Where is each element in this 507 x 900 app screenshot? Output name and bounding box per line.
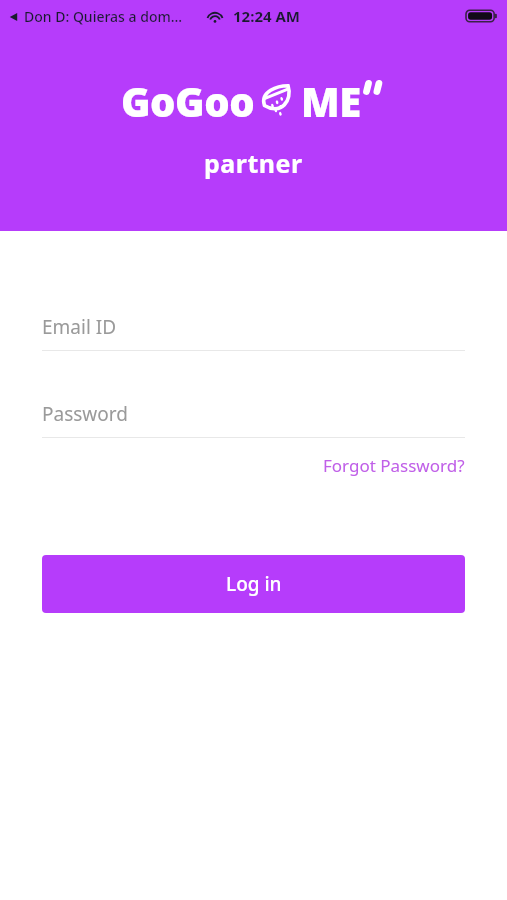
button[interactable]: Email ID bbox=[42, 314, 465, 351]
staticText: Forgot Password? bbox=[323, 454, 465, 477]
staticText: Password bbox=[42, 401, 128, 427]
staticText: partner bbox=[204, 146, 303, 180]
button[interactable]: Log in bbox=[42, 555, 465, 613]
staticText: Don D: Quieras a dom… bbox=[24, 7, 183, 26]
button[interactable]: Password bbox=[42, 401, 465, 438]
staticText: Email ID bbox=[42, 314, 117, 340]
button[interactable]: Forgot Password? bbox=[323, 452, 465, 479]
staticText: ME bbox=[301, 74, 361, 128]
staticText: Log in bbox=[226, 571, 282, 597]
staticText: GoGoo bbox=[121, 74, 255, 128]
staticText: 12:24 AM bbox=[233, 6, 300, 26]
